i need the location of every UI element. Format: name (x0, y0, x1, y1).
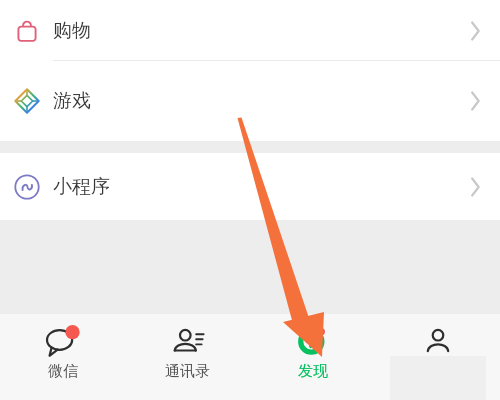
button[interactable]: 我 (375, 314, 500, 400)
button[interactable]: 购物 (0, 0, 500, 61)
staticText: 小程序 (53, 175, 110, 199)
button[interactable]: 通讯录 (125, 314, 250, 400)
button[interactable]: 游戏 (0, 61, 500, 141)
staticText: 购物 (53, 19, 91, 43)
staticText: 游戏 (53, 89, 91, 113)
staticText: 发现 (298, 362, 328, 381)
staticText: 微信 (48, 362, 78, 381)
button[interactable]: 发现 (250, 314, 375, 400)
button[interactable]: 微信 (0, 314, 125, 400)
staticText: 通讯录 (165, 362, 210, 381)
button[interactable]: 小程序 (0, 153, 500, 220)
